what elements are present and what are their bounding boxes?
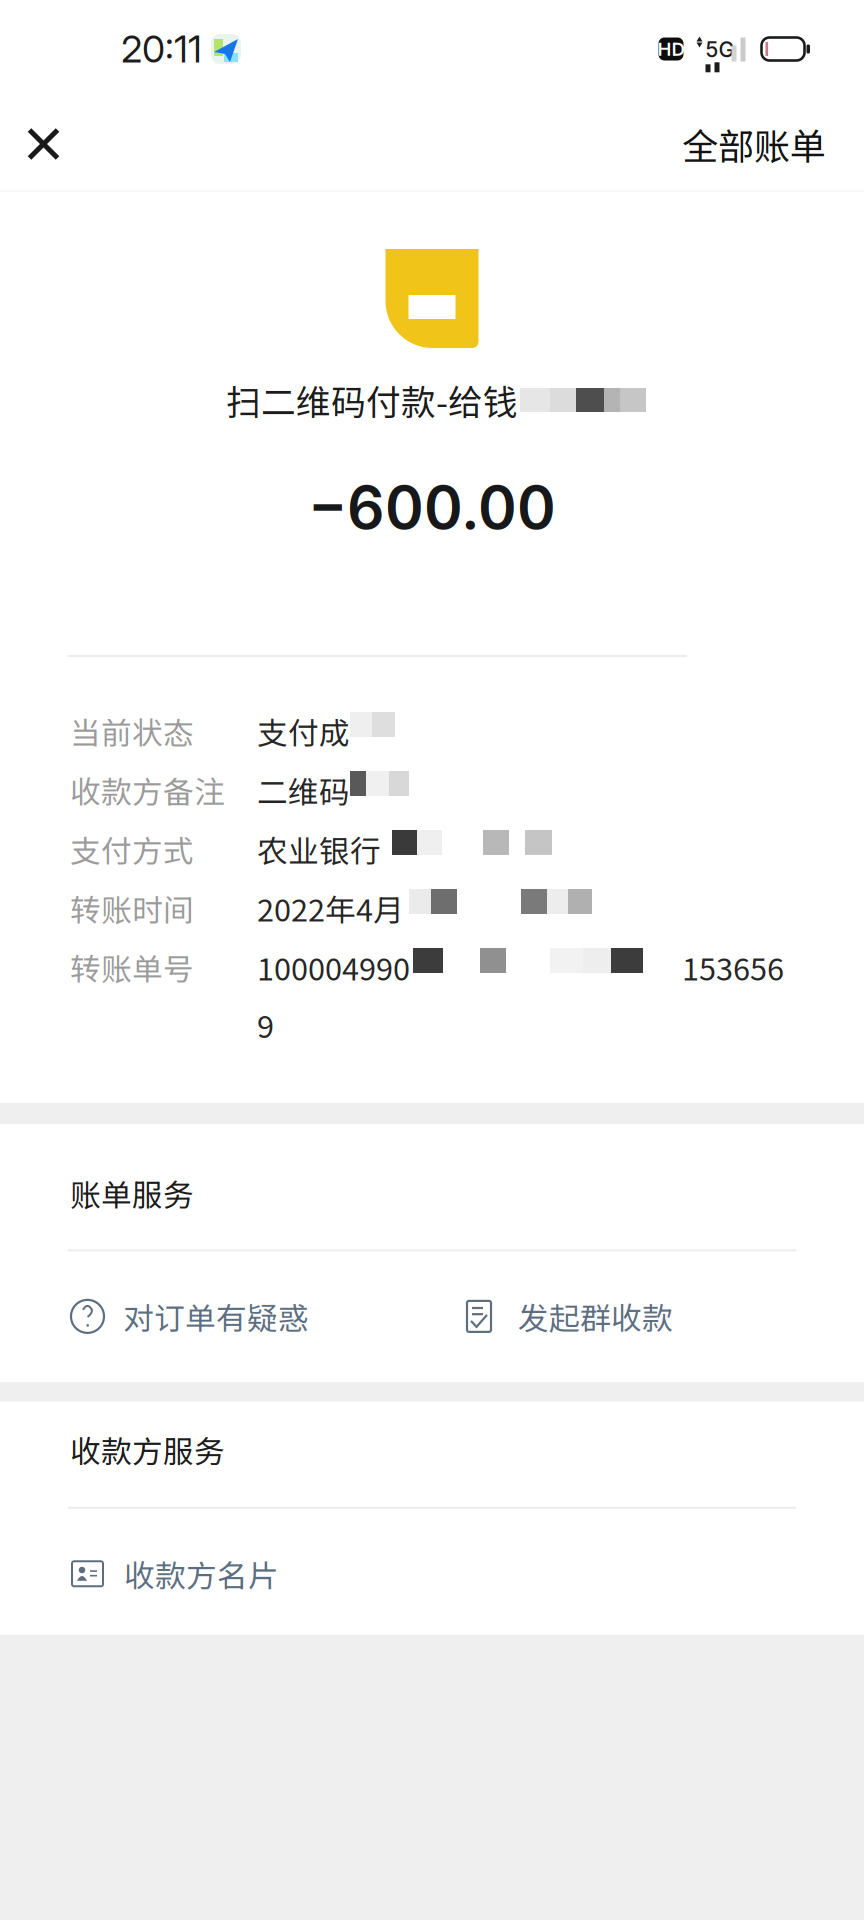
staticText: 2022年4月 xyxy=(257,886,404,930)
staticText: −600.00 xyxy=(308,472,556,543)
staticText: 支付成 xyxy=(257,709,350,753)
staticText: 账单服务 xyxy=(70,1171,194,1215)
staticText: 二维码 xyxy=(257,768,350,812)
staticText: 9 xyxy=(257,1002,274,1047)
staticText: 5G xyxy=(705,36,734,62)
staticText: 全部账单 xyxy=(682,118,826,170)
button[interactable]: 发起群收款 xyxy=(467,1288,673,1344)
staticText: 收款方备注 xyxy=(70,768,225,812)
staticText: HD xyxy=(657,38,684,60)
staticText: 支付方式 xyxy=(70,827,194,871)
staticText: 转账时间 xyxy=(70,886,194,930)
button[interactable]: 收款方名片 xyxy=(72,1546,279,1602)
staticText: 发起群收款 xyxy=(518,1294,673,1339)
button[interactable]: 关闭 xyxy=(0,98,90,190)
staticText: 对订单有疑惑 xyxy=(123,1294,309,1339)
staticText: 153656 xyxy=(682,945,784,989)
staticText: 100004990 xyxy=(257,945,410,989)
staticText: 扫二维码付款-给钱 xyxy=(226,375,518,425)
staticText: 转账单号 xyxy=(70,945,194,989)
staticText: 收款方名片 xyxy=(124,1552,279,1596)
button[interactable]: 对订单有疑惑 xyxy=(71,1288,309,1344)
button[interactable]: 全部账单 xyxy=(656,98,864,190)
staticText: 20:11 xyxy=(121,26,202,72)
staticText: 收款方服务 xyxy=(70,1427,225,1472)
staticText: 当前状态 xyxy=(70,709,194,753)
staticText: 农业银行 xyxy=(257,827,381,871)
